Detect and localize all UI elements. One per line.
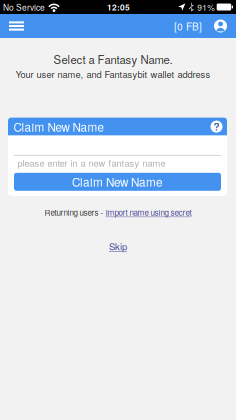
staticText: ? [213,119,219,134]
staticText: No Service [3,1,45,13]
staticText: Claim New Name [13,118,104,135]
staticText: Import name using secret [105,207,191,218]
staticText: Returning users - [44,207,105,218]
button[interactable]: Skip [109,239,127,253]
button[interactable]: Claim New Name [14,173,221,191]
staticText: please enter in a new fantasy name [17,156,165,169]
staticText: Your user name, and Fantasybit wallet ad… [15,67,210,81]
button[interactable]: Help [210,121,222,133]
button[interactable]: Account [210,14,236,37]
staticText: Claim New Name [72,173,163,190]
button[interactable]: [0 FB] [170,14,206,38]
button[interactable]: Import name using secret [105,207,191,218]
button[interactable]: Menu [0,14,32,38]
staticText: Skip [109,239,127,253]
staticText: 91% [197,1,214,13]
staticText: [0 FB] [174,19,202,33]
staticText: 12:05 [107,1,130,13]
staticText: Select a Fantasy Name. [53,51,172,67]
